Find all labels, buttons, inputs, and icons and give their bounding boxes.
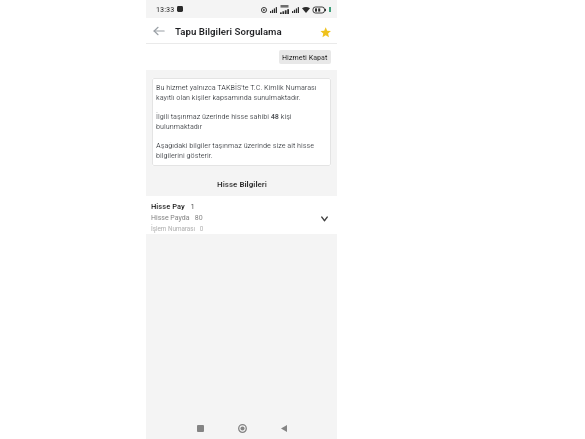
staticText: Hizmeti Kapat <box>282 53 328 61</box>
staticText: Hisse Pay 1 <box>151 202 195 211</box>
staticText: Hisse Payda 80 <box>151 214 203 222</box>
staticText: Aşağıdaki bilgiler taşınmaz üzerinde siz… <box>156 141 327 159</box>
staticText: 13:33 <box>156 5 175 13</box>
button[interactable]: Hizmeti Kapat <box>279 50 331 64</box>
staticText: Bu hizmet yalnızca TAKBİS'te T.C. Kimlik… <box>156 83 327 101</box>
button[interactable]: Hisse Pay 1 <box>146 196 337 234</box>
staticText: İlgili taşınmaz üzerinde hisse sahibi 48… <box>156 112 327 130</box>
button[interactable]: Favorite <box>311 18 337 44</box>
staticText: Hisse Bilgileri <box>217 180 267 189</box>
staticText: İşlem Numarası 0 <box>151 225 204 232</box>
button[interactable]: Recent apps <box>191 419 209 437</box>
staticText: Tapu Bilgileri Sorgulama <box>175 26 311 37</box>
button[interactable]: Home <box>233 419 251 437</box>
button[interactable]: Back <box>275 419 293 437</box>
button[interactable]: Back <box>146 18 172 44</box>
